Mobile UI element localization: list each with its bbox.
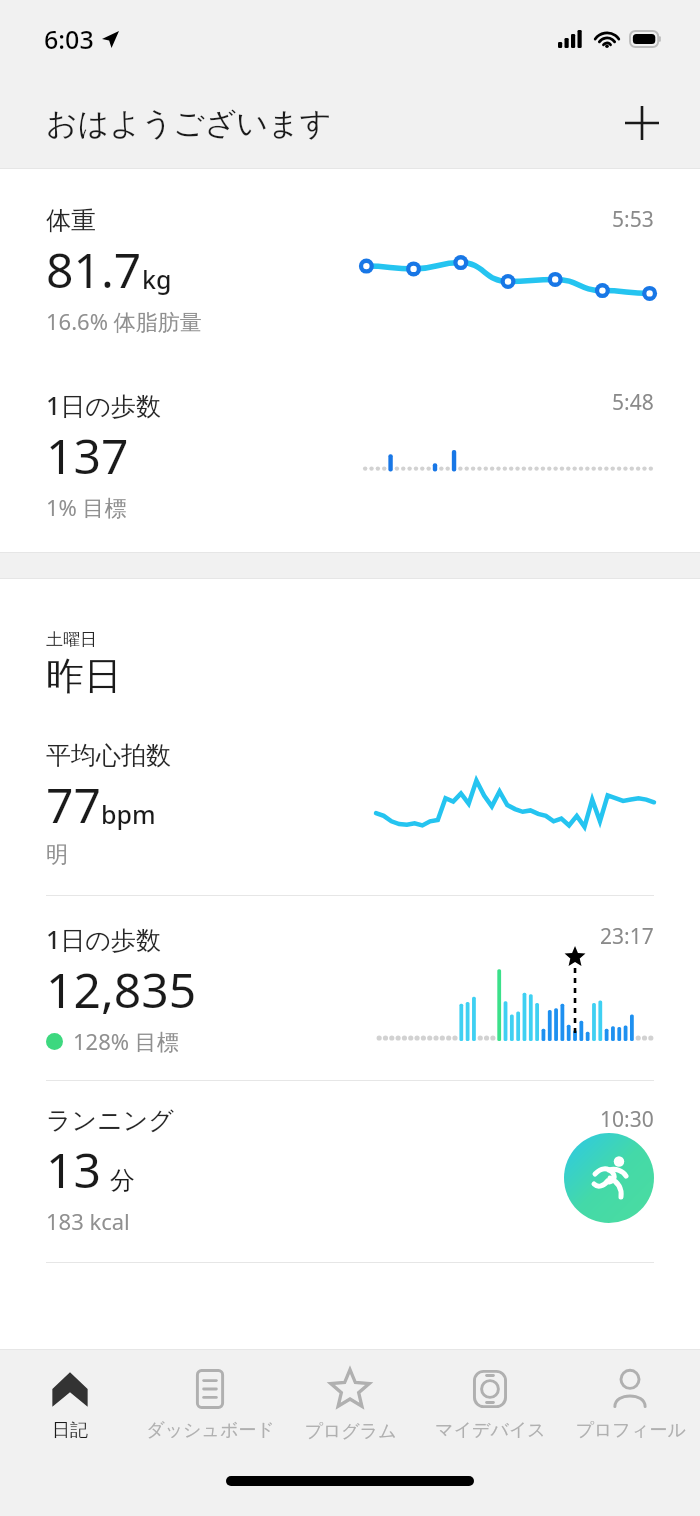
staticText: 1日の歩数 — [46, 388, 161, 422]
staticText: 137 — [46, 423, 129, 488]
staticText: 分 — [110, 1165, 135, 1196]
staticText: 明 — [46, 841, 68, 869]
staticText: 5:53 — [612, 205, 654, 234]
staticText: 1日の歩数 — [46, 922, 161, 956]
staticText: 23:17 — [600, 922, 654, 951]
staticText: マイデバイス — [435, 1419, 546, 1442]
staticText: ランニング — [46, 1105, 174, 1136]
button[interactable]: マイデバイス — [420, 1350, 560, 1460]
staticText: 16.6% 体脂肪量 — [46, 306, 202, 336]
staticText: 77 — [46, 772, 101, 837]
staticText: 1% 目標 — [46, 492, 127, 522]
staticText: 6:03 — [44, 22, 94, 56]
button[interactable]: 1日の歩数 — [0, 896, 700, 1080]
staticText: 体重 — [46, 205, 96, 236]
staticText: 平均心拍数 — [46, 740, 171, 771]
button[interactable]: プログラム — [280, 1350, 420, 1460]
staticText: bpm — [101, 797, 156, 831]
button[interactable]: 体重 — [0, 169, 700, 366]
staticText: ダッシュボード — [146, 1419, 275, 1442]
staticText: 13 — [46, 1137, 101, 1202]
button[interactable]: プロフィール — [560, 1350, 700, 1460]
staticText: kg — [142, 262, 172, 296]
staticText: プログラム — [304, 1420, 397, 1443]
staticText: 128% 目標 — [73, 1026, 179, 1056]
staticText: 12,835 — [46, 957, 197, 1022]
button[interactable]: 平均心拍数 — [0, 740, 700, 895]
button[interactable]: ランニング — [564, 1133, 654, 1223]
staticText: 昨日 — [46, 652, 122, 700]
button[interactable]: 日記 — [0, 1350, 140, 1460]
button[interactable]: 追加 — [610, 91, 674, 155]
staticText: 土曜日 — [46, 629, 97, 650]
staticText: 5:48 — [612, 388, 654, 417]
staticText: プロフィール — [575, 1419, 686, 1442]
staticText: 日記 — [52, 1419, 88, 1442]
staticText: 10:30 — [600, 1105, 654, 1134]
staticText: 81.7 — [46, 237, 142, 302]
staticText: 183 kcal — [46, 1206, 130, 1236]
button[interactable]: ランニング — [0, 1081, 700, 1262]
button[interactable]: ダッシュボード — [140, 1350, 280, 1460]
button[interactable]: 1日の歩数 — [0, 366, 700, 552]
staticText: おはようございます — [46, 104, 332, 143]
